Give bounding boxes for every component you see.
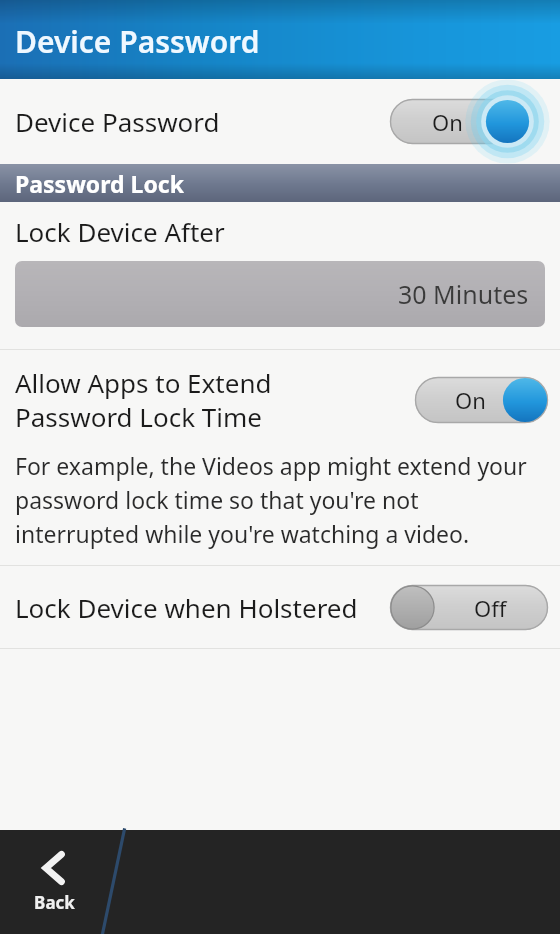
staticText: On (455, 385, 486, 415)
button[interactable]: Allow apps to extend password lock time … (415, 377, 548, 423)
staticText: Device Password (15, 104, 220, 139)
staticText: Lock Device when Holstered (15, 590, 358, 625)
staticText: Password Lock (15, 168, 184, 199)
button[interactable]: Lock device when holstered off (390, 585, 548, 630)
staticText: Back (34, 891, 75, 914)
staticText: Off (474, 593, 507, 623)
button[interactable]: Allow Apps to Extend Password Lock Time (0, 350, 560, 450)
staticText: Lock Device After (15, 214, 225, 249)
staticText: Allow Apps to Extend Password Lock Time (15, 365, 272, 435)
staticText: 30 Minutes (398, 277, 529, 311)
button[interactable]: 30 Minutes (15, 261, 545, 327)
staticText: On (432, 107, 463, 137)
button[interactable]: Device Password on (390, 99, 530, 144)
button[interactable]: Back (18, 850, 90, 914)
button[interactable]: Device Password (0, 79, 560, 164)
staticText: Device Password (15, 21, 260, 62)
staticText: For example, the Videos app might extend… (15, 450, 548, 549)
button[interactable]: Lock Device when Holstered (0, 566, 560, 648)
